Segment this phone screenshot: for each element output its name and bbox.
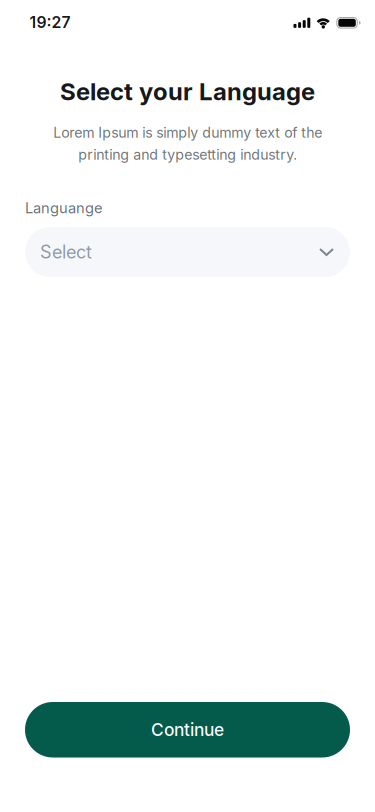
staticText: 19:27 [29, 13, 70, 32]
staticText: Select [40, 241, 92, 263]
staticText: Lorem Ipsum is simply dummy text of the … [53, 124, 322, 163]
button[interactable]: Select [25, 227, 350, 277]
staticText: Languange [25, 199, 103, 217]
staticText: Select your Language [60, 77, 315, 106]
staticText: Continue [151, 719, 224, 740]
button[interactable]: Continue [25, 702, 350, 757]
